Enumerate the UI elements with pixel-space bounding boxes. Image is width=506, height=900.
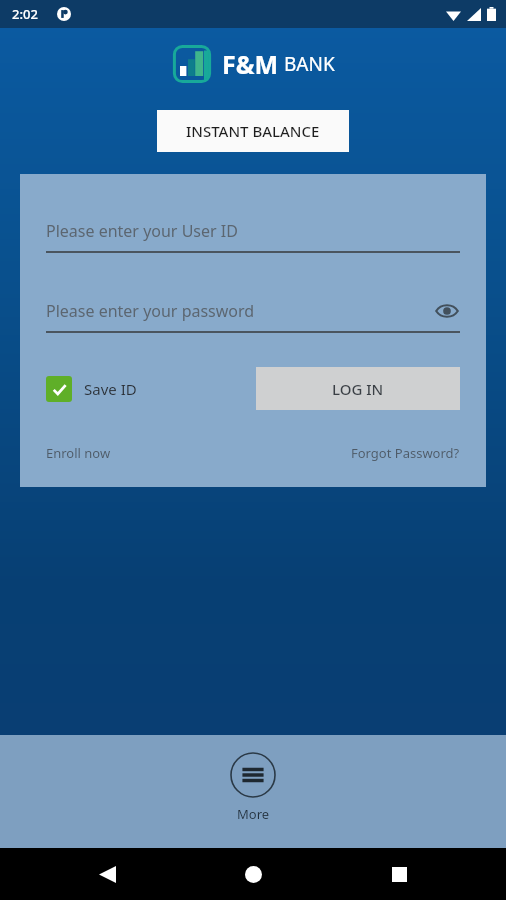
staticText: LOG IN	[332, 379, 384, 399]
button[interactable]: Please enter your password	[46, 299, 460, 333]
staticText: Enroll now	[46, 444, 111, 462]
button[interactable]: Show password	[434, 299, 460, 323]
button[interactable]: Recent apps	[384, 859, 414, 889]
button[interactable]: Home	[238, 859, 268, 889]
staticText: Please enter your password	[46, 300, 255, 322]
button[interactable]: Enroll now	[46, 444, 111, 462]
staticText: BANK	[284, 51, 335, 77]
staticText: Please enter your User ID	[46, 220, 238, 242]
staticText: Save ID	[84, 379, 137, 399]
button[interactable]: Forgot Password?	[351, 444, 460, 462]
button[interactable]: INSTANT BALANCE	[157, 110, 349, 152]
staticText: F&M	[222, 47, 279, 81]
button[interactable]: More	[230, 752, 276, 823]
button[interactable]: Please enter your User ID	[46, 219, 460, 253]
staticText: 2:02	[12, 5, 38, 23]
staticText: Forgot Password?	[351, 444, 460, 462]
button[interactable]: Save ID	[46, 376, 137, 402]
button[interactable]: Back	[92, 859, 122, 889]
staticText: More	[237, 805, 270, 823]
staticText: INSTANT BALANCE	[186, 121, 320, 141]
button[interactable]: LOG IN	[256, 367, 460, 410]
